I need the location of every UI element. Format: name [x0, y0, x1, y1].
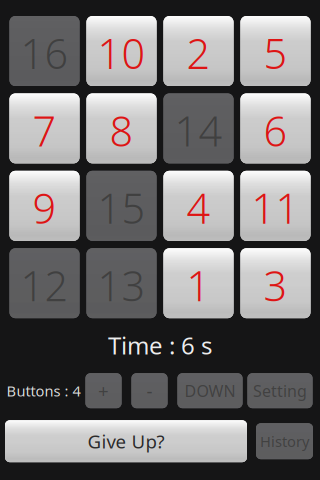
button[interactable]: History — [256, 423, 313, 459]
button[interactable]: DOWN — [177, 373, 242, 408]
button[interactable]: Setting — [247, 373, 312, 408]
button[interactable]: 11 — [240, 171, 310, 241]
staticText: 11 — [251, 180, 299, 235]
button[interactable]: 1 — [163, 248, 233, 318]
staticText: DOWN — [184, 380, 235, 401]
button[interactable]: 8 — [86, 93, 156, 163]
staticText: 13 — [97, 258, 145, 313]
button[interactable]: 7 — [9, 93, 79, 163]
staticText: History — [260, 431, 309, 451]
staticText: 4 — [186, 180, 210, 235]
button[interactable]: 2 — [163, 16, 233, 86]
button[interactable]: 15 — [86, 171, 156, 241]
staticText: 8 — [109, 103, 133, 158]
staticText: 1 — [186, 258, 210, 313]
staticText: 16 — [20, 26, 68, 80]
staticText: 3 — [263, 258, 287, 313]
button[interactable]: 4 — [163, 171, 233, 241]
staticText: 2 — [186, 26, 210, 80]
staticText: + — [98, 378, 109, 403]
staticText: Buttons : 4 — [6, 381, 80, 400]
staticText: 7 — [32, 103, 56, 158]
button[interactable]: 3 — [240, 248, 310, 318]
staticText: 5 — [263, 26, 287, 80]
button[interactable]: 10 — [86, 16, 156, 86]
staticText: Time : 6 s — [108, 329, 212, 361]
button[interactable]: 13 — [86, 248, 156, 318]
button[interactable]: 5 — [240, 16, 310, 86]
staticText: 9 — [32, 180, 56, 235]
button[interactable]: Remove a button — [131, 373, 167, 408]
button[interactable]: 12 — [9, 248, 79, 318]
staticText: - — [146, 378, 152, 403]
staticText: 12 — [20, 258, 68, 313]
staticText: 6 — [263, 103, 287, 158]
staticText: 15 — [97, 180, 145, 235]
button[interactable]: Add a button — [85, 373, 121, 408]
staticText: 10 — [97, 26, 145, 80]
button[interactable]: Give Up? — [5, 420, 247, 462]
staticText: Setting — [253, 380, 307, 401]
staticText: 14 — [174, 103, 222, 158]
button[interactable]: 16 — [9, 16, 79, 86]
button[interactable]: 6 — [240, 93, 310, 163]
button[interactable]: 14 — [163, 93, 233, 163]
staticText: Give Up? — [87, 429, 164, 454]
button[interactable]: 9 — [9, 171, 79, 241]
